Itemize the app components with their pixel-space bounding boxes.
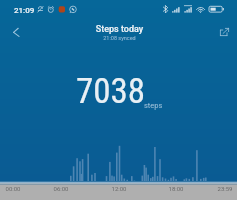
- staticText: steps: [144, 101, 163, 110]
- button[interactable]: Share: [211, 19, 237, 45]
- button[interactable]: Back: [3, 19, 29, 45]
- staticText: 21:08 synced: [1, 35, 237, 41]
- staticText: 18:00: [161, 185, 191, 192]
- staticText: 23:59: [210, 185, 237, 192]
- staticText: 12:00: [104, 185, 134, 192]
- staticText: 06:00: [46, 185, 76, 192]
- staticText: 7038: [76, 71, 146, 112]
- staticText: 00:00: [0, 185, 28, 192]
- staticText: Steps today: [1, 24, 237, 35]
- staticText: 21:09: [14, 6, 35, 15]
